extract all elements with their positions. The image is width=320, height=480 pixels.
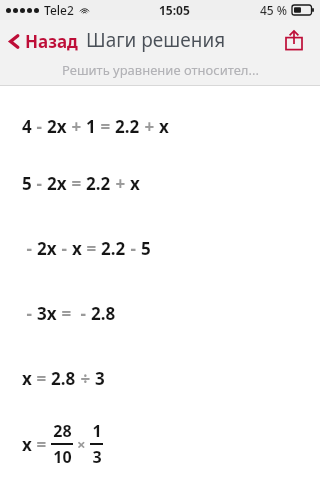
staticText: × — [73, 434, 90, 454]
staticText: x — [159, 115, 169, 138]
staticText: - — [76, 302, 91, 325]
button[interactable]: Share — [276, 22, 312, 58]
staticText: x — [72, 237, 82, 260]
staticText: 10 — [53, 446, 72, 468]
staticText: = — [82, 237, 101, 260]
staticText: Шаги решения — [86, 27, 226, 53]
staticText: Решить уравнение относител... — [62, 61, 259, 79]
staticText: 28 — [53, 420, 72, 442]
staticText: 2.8 — [51, 367, 76, 390]
staticText: 2.8 — [91, 302, 116, 325]
staticText: 1 — [92, 420, 102, 442]
staticText: - — [126, 237, 141, 260]
staticText: 2x — [47, 172, 67, 195]
staticText: 2.2 — [101, 237, 126, 260]
staticText: 4 — [22, 115, 32, 138]
staticText: - — [22, 302, 37, 325]
staticText: = — [32, 367, 51, 390]
staticText: 5 — [22, 172, 32, 195]
staticText: x — [22, 433, 32, 456]
button[interactable]: Назад — [0, 24, 84, 58]
staticText: - — [57, 237, 72, 260]
staticText: Назад — [25, 30, 78, 53]
staticText: - — [22, 237, 37, 260]
staticText: 2x — [47, 115, 67, 138]
staticText: + — [67, 115, 86, 138]
staticText: - — [32, 172, 47, 195]
staticText: Tele2 — [44, 2, 74, 18]
staticText: = — [96, 115, 115, 138]
staticText: 1 — [86, 115, 96, 138]
staticText: 2.2 — [115, 115, 140, 138]
staticText: = — [67, 172, 86, 195]
staticText: + — [111, 172, 130, 195]
staticText: 15:05 — [159, 2, 190, 18]
staticText: 45 % — [260, 2, 288, 18]
staticText: = — [57, 302, 76, 325]
staticText: + — [140, 115, 159, 138]
staticText: x — [22, 367, 32, 390]
staticText: = — [32, 433, 51, 456]
staticText: 2x — [37, 237, 57, 260]
staticText: ÷ — [76, 367, 95, 390]
staticText: 3 — [95, 367, 105, 390]
staticText: 2.2 — [86, 172, 111, 195]
staticText: 3x — [37, 302, 57, 325]
staticText: - — [32, 115, 47, 138]
staticText: x — [130, 172, 140, 195]
staticText: 5 — [141, 237, 151, 260]
staticText: 3 — [92, 446, 102, 468]
